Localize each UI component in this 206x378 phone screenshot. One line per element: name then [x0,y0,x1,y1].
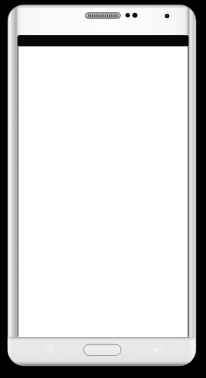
button[interactable]: Home [83,344,121,356]
button[interactable]: Back [143,340,173,362]
button[interactable]: Screen [18,47,188,337]
button[interactable]: Menu [36,340,66,362]
